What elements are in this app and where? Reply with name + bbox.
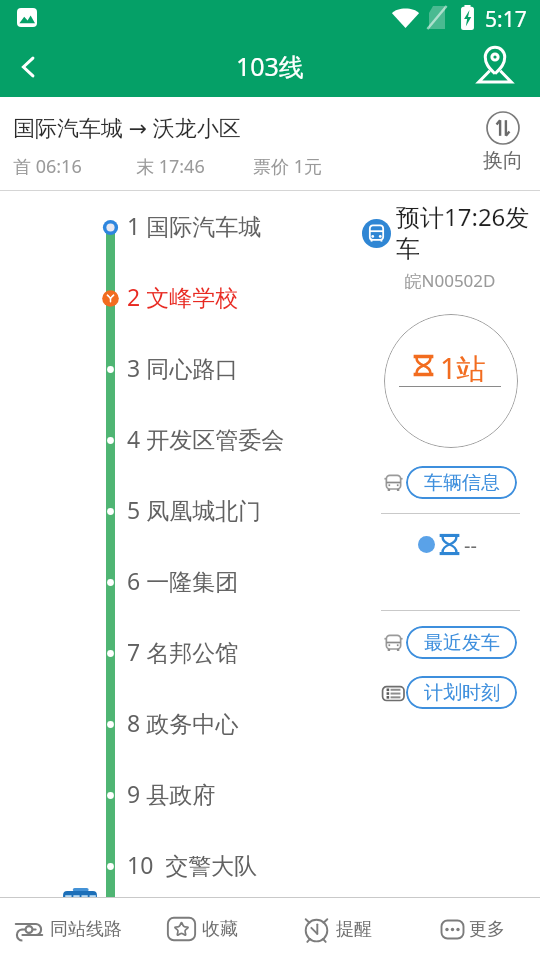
staticText: 103线	[236, 49, 304, 83]
staticText: 4 开发区管委会	[127, 423, 285, 454]
staticText: 最近发车	[424, 631, 500, 655]
staticText: 皖N00502D	[361, 269, 539, 292]
staticText: 同站线路	[50, 918, 122, 941]
button[interactable]: 收藏	[135, 898, 270, 960]
staticText: 3 同心路口	[127, 352, 239, 383]
staticText: 首 06:16	[13, 154, 82, 179]
staticText: 更多	[469, 918, 505, 941]
button[interactable]: 2 文峰学校	[0, 263, 360, 334]
staticText: 7 名邦公馆	[127, 636, 239, 667]
button[interactable]: Back	[0, 38, 58, 96]
button[interactable]: 1 国际汽车城	[0, 192, 360, 263]
button[interactable]: 更多	[405, 898, 540, 960]
staticText: 收藏	[202, 918, 238, 941]
button[interactable]: Map	[464, 36, 526, 97]
staticText: 1站	[440, 348, 486, 388]
staticText: 5:17	[485, 5, 527, 34]
staticText: 5 凤凰城北门	[127, 494, 262, 525]
button[interactable]: 换向	[475, 111, 531, 173]
staticText: 车辆信息	[424, 471, 500, 495]
staticText: 1 国际汽车城	[127, 210, 262, 241]
staticText: 2 文峰学校	[127, 281, 239, 312]
button[interactable]: 9 县政府	[0, 760, 360, 831]
button[interactable]: 同站线路	[0, 898, 135, 960]
button[interactable]: 4 开发区管委会	[0, 405, 360, 476]
staticText: 换向	[483, 148, 523, 173]
button[interactable]: 5 凤凰城北门	[0, 476, 360, 547]
staticText: 计划时刻	[424, 681, 500, 705]
staticText: 提醒	[336, 918, 372, 941]
button[interactable]: 提醒	[270, 898, 405, 960]
button[interactable]: 8 政务中心	[0, 689, 360, 760]
staticText: --	[464, 532, 477, 559]
staticText: 9 县政府	[127, 778, 216, 809]
button[interactable]: 3 同心路口	[0, 334, 360, 405]
staticText: 末 17:46	[136, 154, 205, 179]
staticText: 国际汽车城 → 沃龙小区	[13, 112, 241, 142]
button[interactable]: 最近发车	[406, 626, 517, 659]
staticText: 8 政务中心	[127, 707, 239, 738]
staticText: 预计17:26发车	[396, 200, 540, 264]
staticText: 10 交警大队	[127, 849, 258, 880]
button[interactable]: 10 交警大队	[0, 831, 360, 902]
button[interactable]: 7 名邦公馆	[0, 618, 360, 689]
staticText: 票价 1元	[253, 154, 322, 179]
button[interactable]: 6 一隆集团	[0, 547, 360, 618]
button[interactable]: 车辆信息	[406, 466, 517, 499]
button[interactable]: 计划时刻	[406, 676, 517, 709]
staticText: 6 一隆集团	[127, 565, 239, 596]
